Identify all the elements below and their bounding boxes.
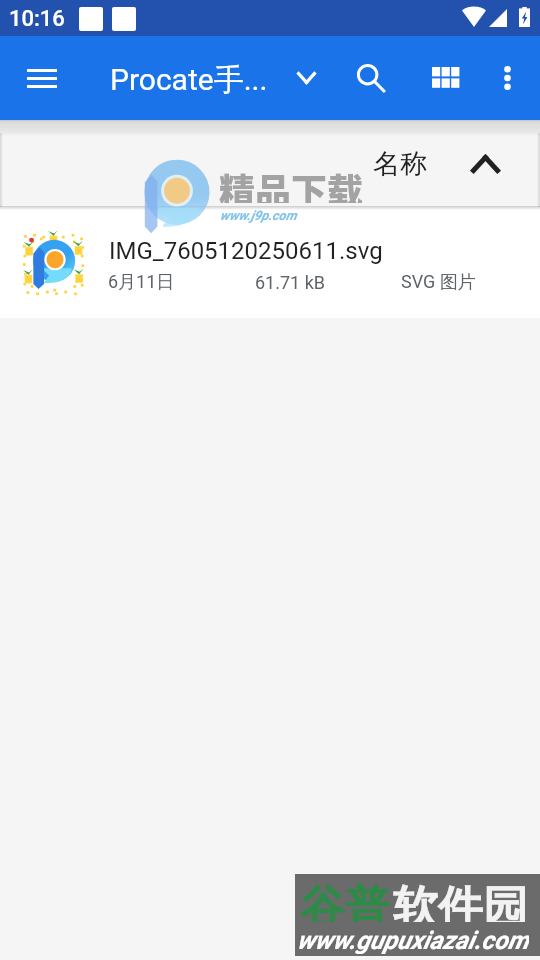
- button[interactable]: Navigation menu: [6, 54, 78, 102]
- staticText: SVG 图片: [401, 271, 476, 294]
- staticText: 6月11日: [108, 271, 175, 294]
- button[interactable]: Sort by name: [0, 120, 540, 207]
- staticText: 名称: [373, 147, 427, 181]
- button[interactable]: Grid view: [423, 54, 467, 102]
- staticText: 软件园: [393, 880, 528, 922]
- staticText: 精品下载: [219, 163, 364, 203]
- button[interactable]: Show dropdown: [284, 54, 328, 102]
- staticText: 谷普: [300, 880, 390, 922]
- button[interactable]: More options: [485, 54, 529, 102]
- button[interactable]: IMG_7605120250611.svg: [0, 210, 540, 318]
- staticText: IMG_7605120250611.svg: [109, 237, 383, 265]
- button[interactable]: Search: [349, 54, 393, 102]
- staticText: Procate手...: [110, 61, 268, 99]
- staticText: www.gupuxiazai.com: [297, 926, 529, 954]
- staticText: 10:16: [9, 6, 65, 32]
- staticText: www.j9p.com: [220, 208, 297, 223]
- staticText: 61.71 kB: [255, 272, 326, 293]
